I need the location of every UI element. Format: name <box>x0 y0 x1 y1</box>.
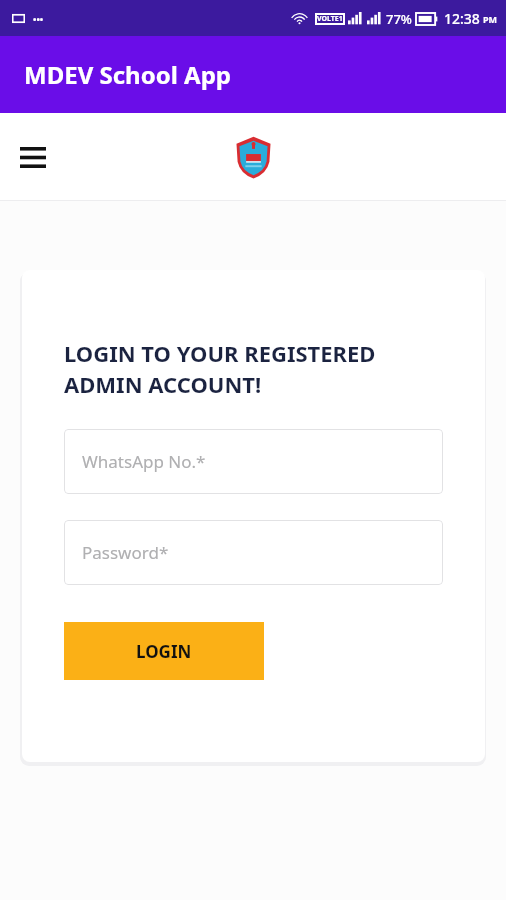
staticText: 12:38 <box>444 9 480 28</box>
button[interactable]: App logo <box>230 134 276 180</box>
staticText: LOGIN TO YOUR REGISTERED ADMIN ACCOUNT! <box>64 338 443 400</box>
staticText: ••• <box>33 13 44 25</box>
staticText: Password* <box>82 541 169 564</box>
button[interactable]: WhatsApp No.* <box>64 429 443 494</box>
staticText: 77% <box>386 10 412 28</box>
staticText: MDEV School App <box>24 58 232 91</box>
staticText: WhatsApp No.* <box>82 450 206 473</box>
staticText: LOGIN <box>136 640 192 663</box>
button[interactable]: Password* <box>64 520 443 585</box>
button[interactable]: Open navigation menu <box>14 138 52 176</box>
staticText: VOLTE1 <box>317 14 343 24</box>
button[interactable]: LOGIN <box>64 622 264 680</box>
staticText: PM <box>483 13 498 25</box>
